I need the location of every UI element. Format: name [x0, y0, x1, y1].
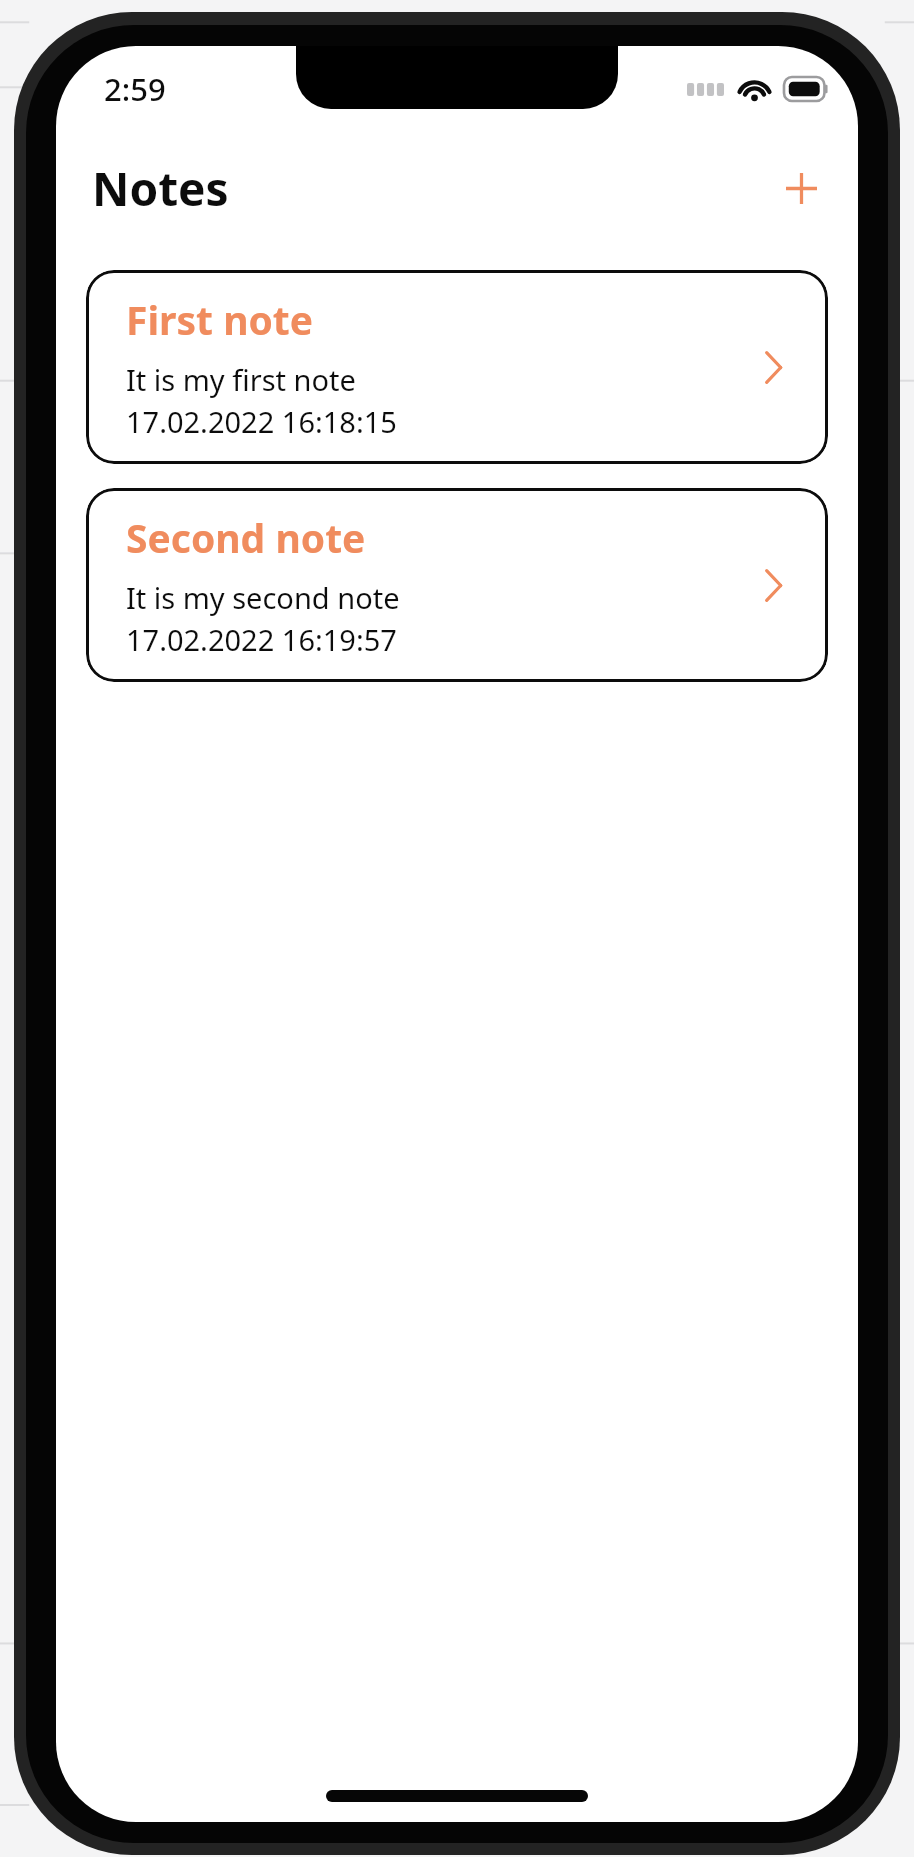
button[interactable]: Second note — [86, 488, 828, 682]
staticText: It is my first note — [126, 360, 356, 399]
staticText: It is my second note — [126, 578, 400, 617]
staticText: First note — [126, 293, 314, 346]
button[interactable]: First note — [86, 270, 828, 464]
other: Open note — [752, 346, 794, 388]
button[interactable]: Add note — [772, 159, 830, 217]
staticText: 17.02.2022 16:19:57 — [126, 620, 397, 659]
other: Open note — [752, 564, 794, 606]
staticText: 17.02.2022 16:18:15 — [126, 402, 397, 441]
staticText: Second note — [126, 511, 366, 564]
staticText: 2:59 — [104, 68, 166, 110]
staticText: Notes — [92, 157, 229, 220]
